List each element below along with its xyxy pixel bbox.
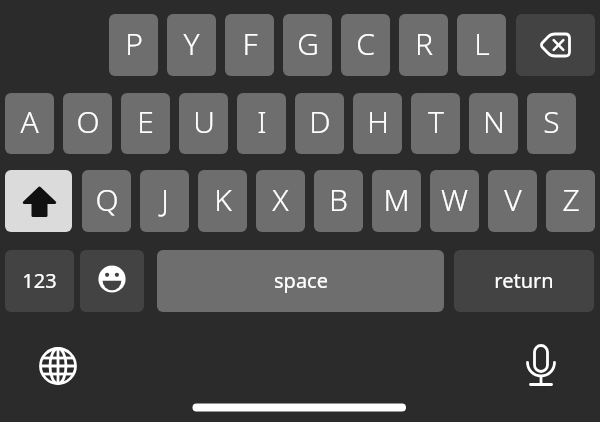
button[interactable]: R xyxy=(399,14,448,76)
button[interactable]: Q xyxy=(82,170,131,232)
button[interactable]: W xyxy=(430,170,479,232)
staticText: K xyxy=(214,179,232,220)
button[interactable]: L xyxy=(457,14,506,76)
staticText: T xyxy=(428,101,444,142)
staticText: E xyxy=(137,101,154,142)
button[interactable]: Y xyxy=(167,14,216,76)
staticText: R xyxy=(415,23,433,64)
button[interactable] xyxy=(516,14,595,76)
button[interactable]: space xyxy=(157,250,444,312)
staticText: Y xyxy=(183,23,200,64)
button[interactable]: Z xyxy=(546,170,595,232)
button[interactable]: U xyxy=(179,93,228,154)
staticText: S xyxy=(543,101,560,142)
button[interactable]: T xyxy=(411,93,460,154)
button[interactable]: V xyxy=(488,170,537,232)
staticText: N xyxy=(483,101,505,142)
button[interactable]: N xyxy=(469,93,518,154)
staticText: A xyxy=(20,101,39,142)
button[interactable]: C xyxy=(341,14,390,76)
staticText: H xyxy=(367,101,389,142)
staticText: 123 xyxy=(22,267,57,294)
button[interactable]: P xyxy=(109,14,158,76)
button[interactable]: J xyxy=(140,170,189,232)
staticText: F xyxy=(242,23,258,64)
staticText: P xyxy=(125,23,143,64)
button[interactable]: A xyxy=(5,93,54,154)
staticText: Q xyxy=(95,179,119,220)
button[interactable]: D xyxy=(295,93,344,154)
button[interactable]: O xyxy=(63,93,112,154)
button[interactable]: E xyxy=(121,93,170,154)
button[interactable] xyxy=(80,250,144,312)
button[interactable]: X xyxy=(256,170,305,232)
staticText: L xyxy=(474,23,490,64)
button[interactable]: return xyxy=(454,250,594,312)
button[interactable]: B xyxy=(314,170,363,232)
button[interactable]: F xyxy=(225,14,274,76)
staticText: U xyxy=(193,101,215,142)
staticText: C xyxy=(356,23,375,64)
button[interactable]: 123 xyxy=(5,250,74,312)
staticText: V xyxy=(504,179,522,220)
staticText: W xyxy=(441,179,468,220)
button[interactable] xyxy=(511,336,571,396)
staticText: O xyxy=(76,101,100,142)
staticText: B xyxy=(329,179,348,220)
staticText: X xyxy=(272,179,289,220)
staticText: G xyxy=(297,23,319,64)
staticText: Z xyxy=(562,179,580,220)
button[interactable] xyxy=(5,170,72,232)
staticText: space xyxy=(274,267,328,294)
staticText: J xyxy=(161,179,169,220)
staticText: D xyxy=(309,101,331,142)
button[interactable]: I xyxy=(237,93,286,154)
button[interactable]: K xyxy=(198,170,247,232)
staticText: M xyxy=(383,179,410,220)
button[interactable]: M xyxy=(372,170,421,232)
staticText: I xyxy=(257,101,267,142)
button[interactable]: H xyxy=(353,93,402,154)
button[interactable] xyxy=(28,336,88,396)
button[interactable]: G xyxy=(283,14,332,76)
button[interactable]: S xyxy=(527,93,576,154)
staticText: return xyxy=(494,267,554,294)
